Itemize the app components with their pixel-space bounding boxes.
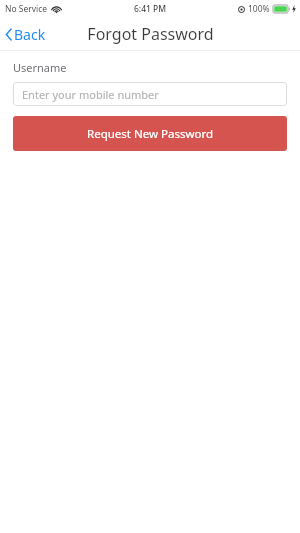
staticText: Request New Password — [87, 126, 213, 142]
staticText: Enter your mobile number — [22, 87, 159, 102]
staticText: 6:41 PM — [134, 3, 167, 15]
staticText: Username — [13, 60, 67, 75]
button[interactable]: Enter your mobile number — [13, 82, 287, 106]
staticText: Forgot Password — [87, 23, 214, 45]
staticText: 100% — [248, 3, 270, 15]
staticText: Back — [14, 25, 46, 44]
button[interactable]: Back — [6, 25, 46, 44]
staticText: No Service — [5, 3, 48, 15]
button[interactable]: Request New Password — [13, 116, 287, 151]
